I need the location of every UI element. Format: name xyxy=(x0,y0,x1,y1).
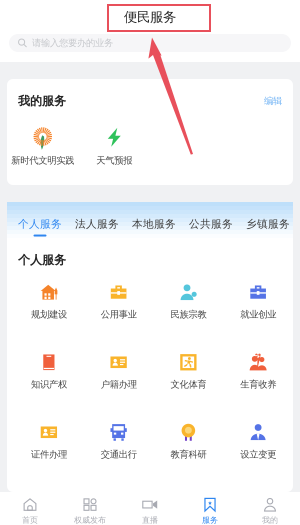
staticText: 我的 xyxy=(262,515,278,525)
staticText: 个人服务 xyxy=(18,253,66,267)
staticText: 编辑 xyxy=(264,95,282,107)
button[interactable]: 公共服务 xyxy=(189,217,233,236)
button[interactable]: 服务 xyxy=(180,497,240,525)
staticText: 首页 xyxy=(22,515,38,525)
staticText: 新时代文明实践 xyxy=(11,155,74,166)
button[interactable]: 就业创业 xyxy=(223,284,293,320)
staticText: 规划建设 xyxy=(31,309,67,320)
button[interactable]: 规划建设 xyxy=(14,284,84,320)
staticText: 证件办理 xyxy=(31,449,67,460)
button[interactable]: 本地服务 xyxy=(132,217,176,236)
staticText: 生育收养 xyxy=(240,379,276,390)
staticText: 户籍办理 xyxy=(101,379,137,390)
button[interactable]: 民族宗教 xyxy=(153,284,223,320)
button[interactable]: 教育科研 xyxy=(153,424,223,460)
staticText: 交通出行 xyxy=(101,449,137,460)
staticText: 设立变更 xyxy=(240,449,276,460)
button[interactable]: 天气预报 xyxy=(78,128,150,166)
staticText: 直播 xyxy=(142,515,158,525)
staticText: 权威发布 xyxy=(74,515,106,525)
button[interactable]: 我的 xyxy=(240,497,300,525)
staticText: 天气预报 xyxy=(96,155,132,166)
button[interactable]: 证件办理 xyxy=(14,424,84,460)
staticText: 公共服务 xyxy=(189,217,233,230)
button[interactable]: 编辑 xyxy=(264,95,282,107)
button[interactable]: 知识产权 xyxy=(14,354,84,390)
staticText: 本地服务 xyxy=(132,217,176,230)
staticText: 知识产权 xyxy=(31,379,67,390)
staticText: 便民服务 xyxy=(124,9,176,25)
staticText: 就业创业 xyxy=(240,309,276,320)
staticText: 法人服务 xyxy=(75,217,119,230)
staticText: 公用事业 xyxy=(101,309,137,320)
button[interactable]: 公用事业 xyxy=(84,284,154,320)
staticText: 我的服务 xyxy=(18,94,66,108)
button[interactable]: 新时代文明实践 xyxy=(7,128,78,166)
staticText: 民族宗教 xyxy=(170,309,206,320)
button[interactable]: 法人服务 xyxy=(75,217,119,236)
staticText: 服务 xyxy=(202,515,218,525)
button[interactable]: 生育收养 xyxy=(223,354,293,390)
button[interactable]: 乡镇服务 xyxy=(246,217,290,236)
button[interactable]: 文化体育 xyxy=(153,354,223,390)
button[interactable]: 权威发布 xyxy=(60,497,120,525)
staticText: 文化体育 xyxy=(170,379,206,390)
button[interactable]: 直播 xyxy=(120,497,180,525)
button[interactable]: 个人服务 xyxy=(18,217,62,236)
staticText: 个人服务 xyxy=(18,217,62,230)
staticText: 教育科研 xyxy=(170,449,206,460)
button[interactable]: 户籍办理 xyxy=(84,354,154,390)
button[interactable]: 设立变更 xyxy=(223,424,293,460)
button[interactable]: 首页 xyxy=(0,497,60,525)
button[interactable]: 交通出行 xyxy=(84,424,154,460)
staticText: 乡镇服务 xyxy=(246,217,290,230)
staticText: 请输入您要办的业务 xyxy=(32,37,113,49)
